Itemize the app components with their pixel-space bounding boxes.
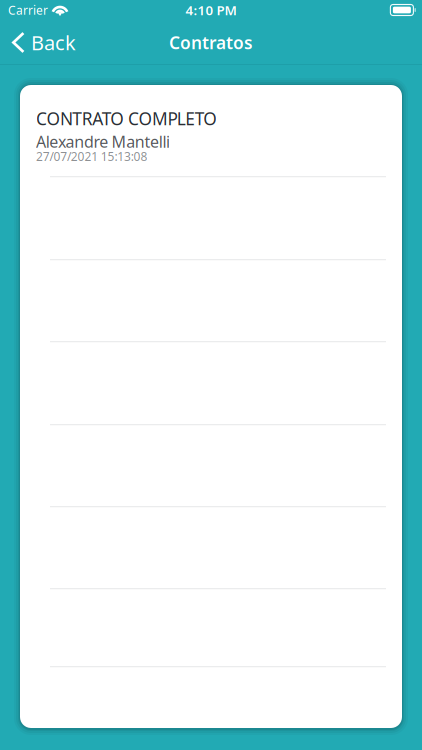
button[interactable]: Back (0, 20, 84, 64)
staticText: Back (31, 29, 76, 56)
staticText: 27/07/2021 15:13:08 (36, 148, 147, 164)
staticText: Contratos (169, 31, 253, 54)
staticText: Alexandre Mantelli (36, 131, 170, 152)
staticText: CONTRATO COMPLETO (36, 107, 217, 130)
staticText: 4:10 PM (185, 1, 236, 19)
staticText: Carrier (8, 2, 48, 18)
button[interactable]: CONTRATO COMPLETO (36, 107, 386, 164)
